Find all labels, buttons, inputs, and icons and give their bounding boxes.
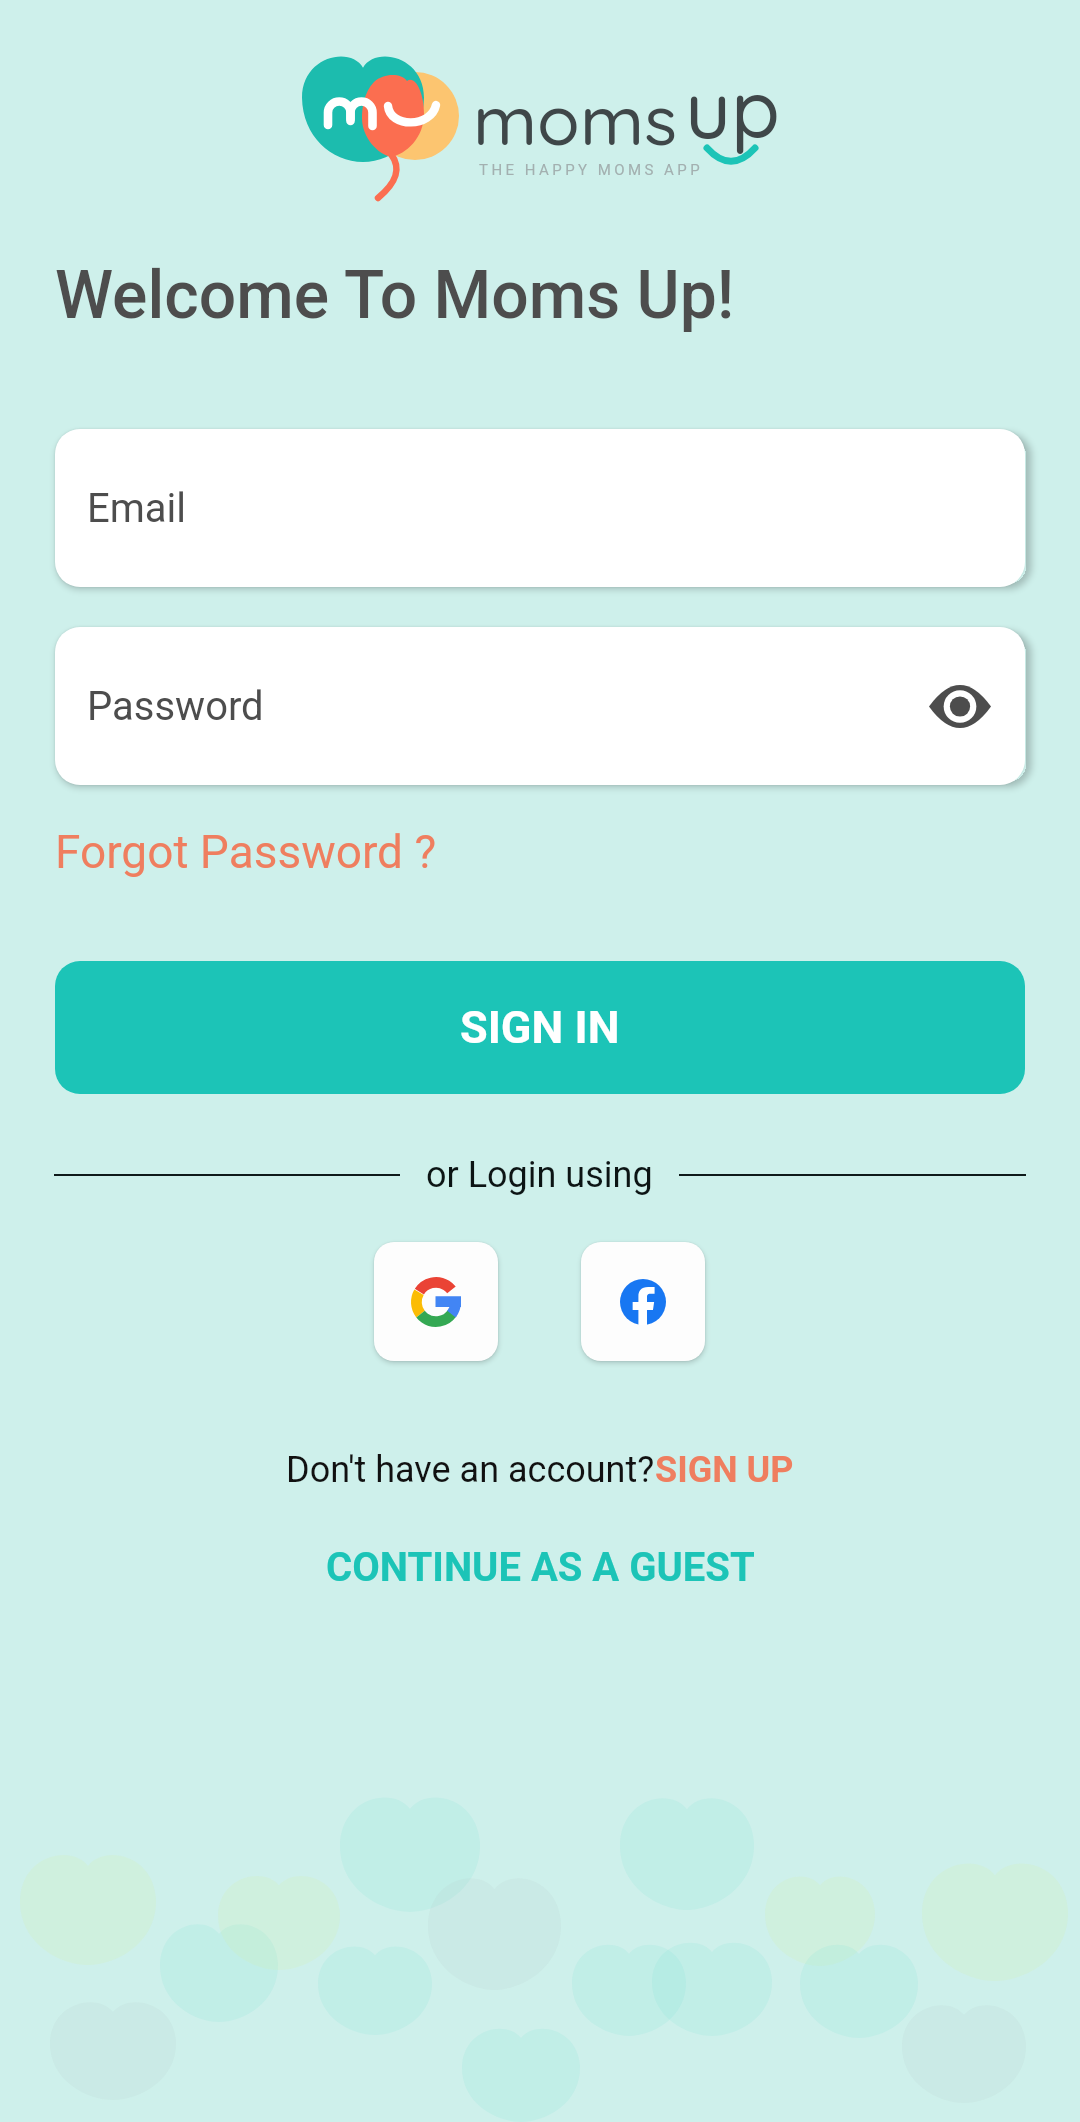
staticText: moms xyxy=(473,75,678,163)
button[interactable]: SIGN IN xyxy=(55,961,1025,1094)
button[interactable]: Email xyxy=(55,429,1025,587)
button[interactable]: Show password xyxy=(915,661,1005,751)
staticText: CONTINUE AS A GUEST xyxy=(326,1544,755,1591)
staticText: Welcome To Moms Up! xyxy=(55,257,735,334)
button[interactable]: Password xyxy=(55,627,1025,785)
button[interactable]: Don't have an account? xyxy=(286,1449,794,1491)
staticText: up xyxy=(685,58,781,158)
staticText: Password xyxy=(87,683,264,730)
staticText: THE HAPPY MOMS APP xyxy=(479,161,704,179)
staticText: Forgot Password ? xyxy=(55,825,437,879)
staticText: SIGN IN xyxy=(460,1001,620,1054)
button[interactable]: Sign in with Facebook xyxy=(581,1242,705,1361)
staticText: or Login using xyxy=(426,1154,653,1196)
button[interactable]: Sign in with Google xyxy=(374,1242,498,1361)
button[interactable]: Forgot Password ? xyxy=(55,825,437,879)
staticText: Email xyxy=(87,485,187,532)
staticText: SIGN UP xyxy=(655,1449,794,1491)
button[interactable]: CONTINUE AS A GUEST xyxy=(326,1544,755,1591)
staticText: Don't have an account? xyxy=(286,1449,655,1491)
